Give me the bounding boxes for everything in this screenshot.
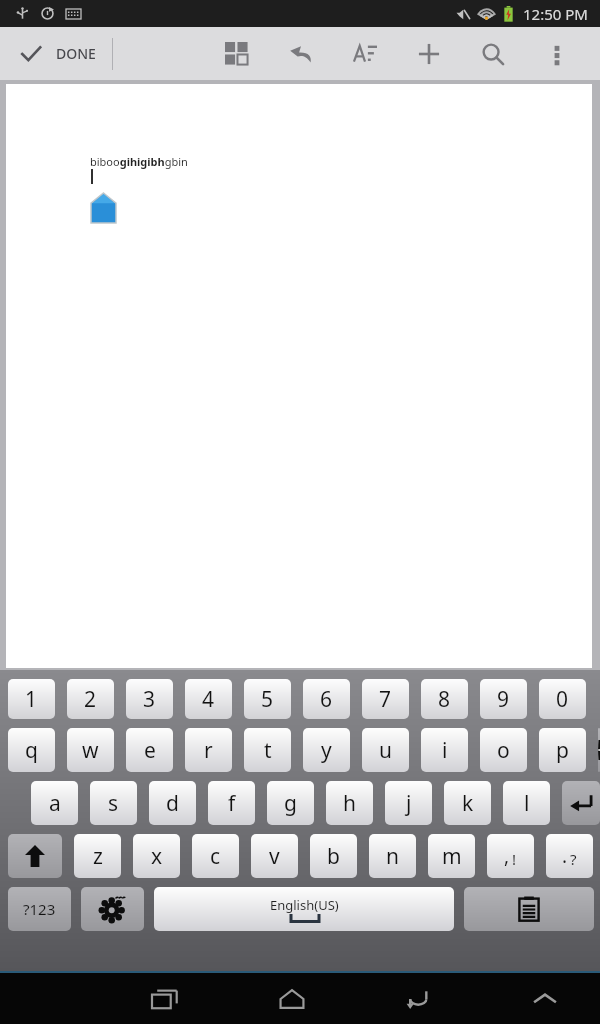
button[interactable]: Keyboard settings xyxy=(81,887,144,931)
staticText: o xyxy=(497,736,510,765)
button[interactable]: Search xyxy=(472,33,514,75)
staticText: 9 xyxy=(497,685,510,714)
staticText: w xyxy=(82,736,99,765)
button[interactable]: x xyxy=(133,834,180,878)
staticText: l xyxy=(524,789,530,818)
button[interactable]: Back xyxy=(383,975,453,1023)
staticText: n xyxy=(386,842,399,871)
staticText: b xyxy=(327,842,340,871)
button[interactable]: DONE xyxy=(0,27,112,80)
button[interactable]: 4 xyxy=(185,679,232,719)
staticText: k xyxy=(462,789,474,818)
staticText: h xyxy=(343,789,356,818)
button[interactable]: s xyxy=(90,781,137,825)
button[interactable]: g xyxy=(267,781,314,825)
button[interactable]: 7 xyxy=(362,679,409,719)
button[interactable]: Layout xyxy=(216,33,258,75)
button[interactable]: l xyxy=(503,781,550,825)
button[interactable]: 2 xyxy=(67,679,114,719)
button[interactable]: 1 xyxy=(8,679,55,719)
staticText: y xyxy=(321,736,332,765)
staticText: English(US) xyxy=(270,896,339,914)
staticText: ? xyxy=(570,849,577,869)
button[interactable]: 8 xyxy=(421,679,468,719)
button[interactable]: , xyxy=(487,834,534,878)
button[interactable]: t xyxy=(244,728,291,772)
staticText: DONE xyxy=(56,44,96,63)
button[interactable]: w xyxy=(67,728,114,772)
button[interactable]: Backspace xyxy=(598,728,600,772)
button[interactable]: Clipboard xyxy=(464,887,594,931)
button[interactable]: Enter xyxy=(562,781,600,825)
button[interactable]: r xyxy=(185,728,232,772)
button[interactable]: m xyxy=(428,834,475,878)
staticText: , xyxy=(504,843,510,869)
staticText: . xyxy=(562,843,568,869)
button[interactable]: z xyxy=(74,834,121,878)
staticText: g xyxy=(284,789,297,818)
button[interactable]: Undo xyxy=(280,33,322,75)
staticText: u xyxy=(379,736,392,765)
button[interactable]: 6 xyxy=(303,679,350,719)
button[interactable]: a xyxy=(31,781,78,825)
staticText: 5 xyxy=(261,685,274,714)
staticText: f xyxy=(228,789,236,818)
button[interactable]: Shift xyxy=(8,834,62,878)
staticText: 6 xyxy=(320,685,333,714)
staticText: i xyxy=(442,736,448,765)
staticText: 1 xyxy=(25,685,38,714)
staticText: ?123 xyxy=(23,899,56,919)
staticText: m xyxy=(442,842,462,871)
button[interactable]: f xyxy=(208,781,255,825)
button[interactable]: Text format xyxy=(344,33,386,75)
button[interactable]: 3 xyxy=(126,679,173,719)
button[interactable]: More options xyxy=(536,33,578,75)
button[interactable]: c xyxy=(192,834,239,878)
staticText: ! xyxy=(512,849,517,869)
button[interactable]: Add xyxy=(408,33,450,75)
button[interactable]: 5 xyxy=(244,679,291,719)
button[interactable]: o xyxy=(480,728,527,772)
staticText: z xyxy=(93,842,103,871)
staticText: 3 xyxy=(143,685,156,714)
button[interactable]: y xyxy=(303,728,350,772)
staticText: 4 xyxy=(202,685,215,714)
button[interactable]: q xyxy=(8,728,55,772)
staticText: 7 xyxy=(379,685,392,714)
button[interactable]: h xyxy=(326,781,373,825)
button[interactable]: . xyxy=(546,834,593,878)
button[interactable]: ?123 xyxy=(8,887,71,931)
staticText: biboogihigibhgbin xyxy=(90,154,188,169)
button[interactable]: v xyxy=(251,834,298,878)
staticText: q xyxy=(25,736,38,765)
button[interactable]: b xyxy=(310,834,357,878)
button[interactable]: k xyxy=(444,781,491,825)
staticText: r xyxy=(204,736,213,765)
staticText: x xyxy=(151,842,163,871)
button[interactable]: 0 xyxy=(539,679,586,719)
staticText: p xyxy=(556,736,569,765)
button[interactable]: Hide keyboard xyxy=(510,975,580,1023)
button[interactable]: 9 xyxy=(480,679,527,719)
staticText: a xyxy=(49,789,61,818)
button[interactable]: Recent apps xyxy=(130,975,200,1023)
button[interactable]: e xyxy=(126,728,173,772)
button[interactable]: English(US) xyxy=(154,887,454,931)
button[interactable]: p xyxy=(539,728,586,772)
staticText: v xyxy=(269,842,280,871)
staticText: 2 xyxy=(84,685,97,714)
button[interactable]: i xyxy=(421,728,468,772)
staticText: t xyxy=(264,736,272,765)
button[interactable]: d xyxy=(149,781,196,825)
button[interactable]: u xyxy=(362,728,409,772)
button[interactable]: Home xyxy=(257,975,327,1023)
staticText: c xyxy=(210,842,221,871)
staticText: s xyxy=(108,789,119,818)
staticText: j xyxy=(406,789,412,818)
staticText: e xyxy=(144,736,156,765)
staticText: d xyxy=(166,789,179,818)
button[interactable]: j xyxy=(385,781,432,825)
staticText: 0 xyxy=(556,685,569,714)
button[interactable]: n xyxy=(369,834,416,878)
staticText: 8 xyxy=(438,685,451,714)
